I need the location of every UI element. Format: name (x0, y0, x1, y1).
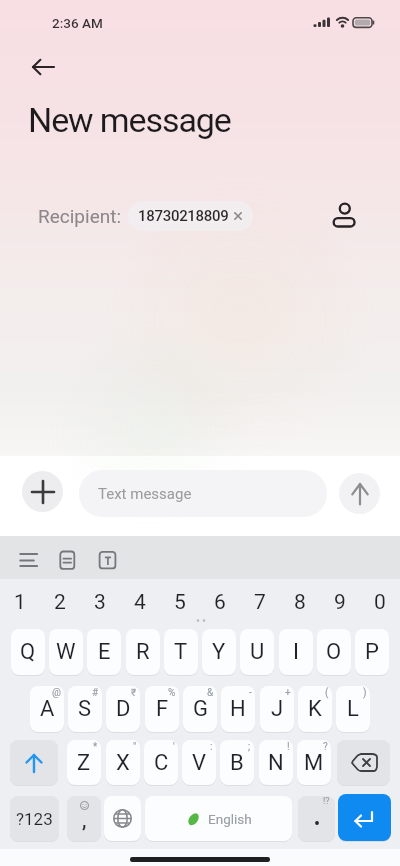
button[interactable]: 18730218809 (128, 201, 253, 231)
button[interactable] (104, 796, 141, 841)
staticText: H (230, 696, 246, 722)
staticText: 2:36 AM (52, 15, 103, 31)
staticText: Y (212, 639, 226, 665)
staticText: ( (325, 687, 329, 699)
staticText: ! (287, 741, 290, 753)
staticText: P (365, 639, 379, 665)
staticText: + (285, 687, 291, 699)
button[interactable] (337, 740, 390, 785)
button[interactable]: Y (202, 629, 236, 675)
staticText: ) (363, 687, 367, 699)
staticText: N (268, 750, 284, 776)
staticText: & (207, 687, 214, 699)
button[interactable]: J (260, 686, 294, 732)
button[interactable]: G (183, 686, 217, 732)
staticText: 18730218809 (138, 207, 229, 225)
button[interactable]: N (259, 740, 293, 785)
button[interactable]: 5 (160, 585, 200, 619)
staticText: O (326, 639, 342, 665)
staticText: Text message (98, 485, 192, 503)
button[interactable]: L (336, 686, 370, 732)
button[interactable]: S (68, 686, 102, 732)
button[interactable]: 3 (80, 585, 120, 619)
button[interactable]: 0 (360, 585, 400, 619)
button[interactable]: W (49, 629, 83, 675)
staticText: K (308, 696, 322, 722)
button[interactable]: V (182, 740, 216, 785)
staticText: 2 (54, 590, 66, 615)
button[interactable]: K (298, 686, 332, 732)
button[interactable]: 2 (40, 585, 80, 619)
button[interactable]: !? (298, 796, 335, 841)
staticText: 5 (174, 590, 186, 615)
button[interactable] (339, 473, 380, 514)
button[interactable]: , (67, 796, 101, 841)
staticText: D (116, 696, 131, 722)
staticText: 6 (214, 590, 226, 615)
button[interactable]: Z (67, 740, 101, 785)
button[interactable]: R (126, 629, 160, 675)
staticText: !? (323, 796, 330, 807)
button[interactable] (21, 54, 47, 80)
button[interactable]: 6 (200, 585, 240, 619)
staticText: R (136, 639, 150, 665)
staticText: 8 (294, 590, 306, 615)
staticText: I (293, 639, 299, 665)
staticText: 3 (94, 590, 106, 615)
staticText: ₹ (131, 687, 137, 699)
staticText: L (347, 696, 359, 722)
button[interactable] (22, 471, 63, 512)
staticText: English (208, 811, 252, 827)
staticText: : (210, 741, 213, 753)
button[interactable]: E (87, 629, 121, 675)
staticText: 4 (134, 590, 146, 615)
staticText: % (168, 687, 176, 699)
button[interactable]: F (145, 686, 179, 732)
staticText: ' (173, 741, 175, 753)
staticText: 0 (374, 590, 386, 615)
button[interactable]: A (30, 686, 64, 732)
button[interactable]: Q (11, 629, 45, 675)
button[interactable] (10, 740, 58, 785)
button[interactable]: D (106, 686, 140, 732)
staticText: F (156, 696, 169, 722)
staticText: X (116, 750, 130, 776)
staticText: ? (323, 741, 328, 753)
button[interactable]: X (106, 740, 140, 785)
staticText: A (40, 696, 55, 722)
button[interactable]: O (317, 629, 351, 675)
staticText: G (193, 696, 208, 722)
button[interactable]: I (279, 629, 313, 675)
button[interactable]: B (220, 740, 254, 785)
button[interactable]: 7 (240, 585, 280, 619)
button[interactable]: Text message (79, 470, 327, 517)
staticText: @ (52, 687, 61, 699)
button[interactable]: T (164, 629, 198, 675)
button[interactable]: 1 (0, 585, 40, 619)
staticText: S (78, 696, 92, 722)
staticText: M (304, 750, 324, 776)
button[interactable]: 4 (120, 585, 160, 619)
staticText: V (192, 750, 207, 776)
staticText: Z (77, 750, 91, 776)
button[interactable]: P (355, 629, 389, 675)
staticText: E (98, 639, 111, 665)
button[interactable] (338, 794, 391, 841)
staticText: New message (28, 100, 231, 140)
button[interactable]: C (144, 740, 178, 785)
staticText: J (271, 696, 284, 722)
button[interactable]: English (145, 796, 292, 841)
button[interactable]: ?123 (10, 796, 59, 841)
button[interactable]: M (297, 740, 331, 785)
button[interactable]: U (240, 629, 274, 675)
button[interactable]: 8 (280, 585, 320, 619)
button[interactable] (331, 198, 359, 231)
staticText: T (174, 639, 188, 665)
staticText: 9 (334, 590, 346, 615)
button[interactable]: H (221, 686, 255, 732)
staticText: U (250, 639, 265, 665)
staticText: ?123 (16, 809, 53, 829)
staticText: , (82, 808, 87, 831)
staticText: # (92, 687, 99, 699)
button[interactable]: 9 (320, 585, 360, 619)
